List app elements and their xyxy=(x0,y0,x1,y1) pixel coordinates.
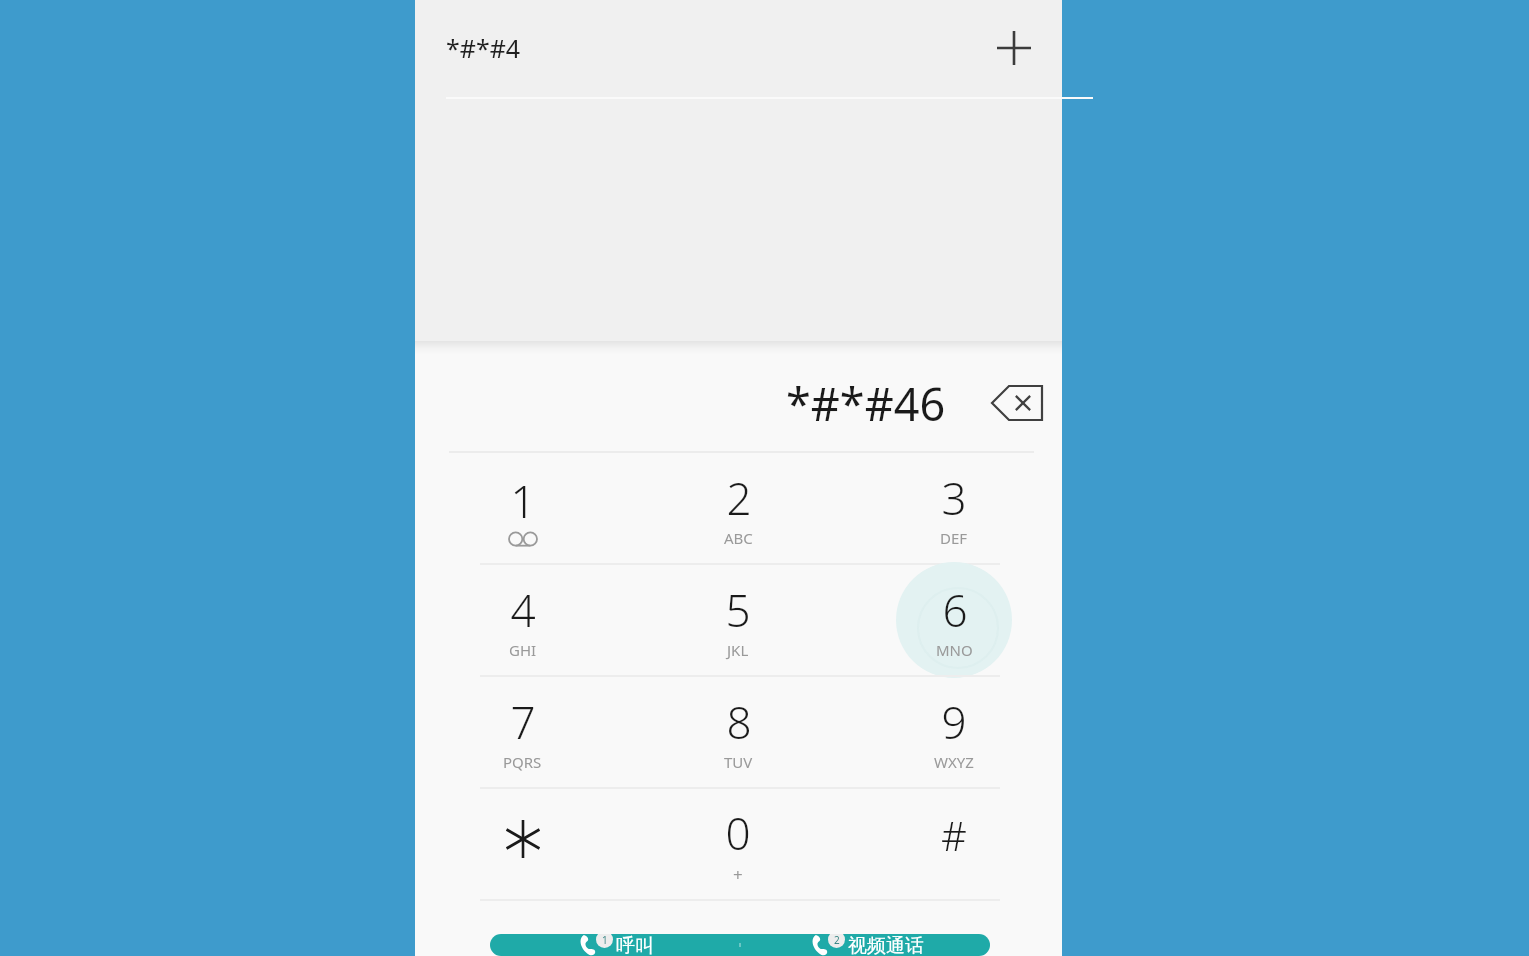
staticText: 呼叫 xyxy=(616,934,654,956)
staticText: 1 xyxy=(510,471,536,531)
button[interactable]: 1 xyxy=(490,934,739,956)
staticText: DEF xyxy=(940,528,968,548)
staticText: 6 xyxy=(942,580,968,640)
button[interactable]: 4 xyxy=(415,565,630,675)
staticText: WXYZ xyxy=(934,752,974,772)
staticText: 2 xyxy=(726,468,752,528)
staticText: + xyxy=(733,863,743,886)
staticText: 0 xyxy=(725,803,751,863)
staticText: 8 xyxy=(726,692,752,752)
staticText: TUV xyxy=(724,752,753,772)
button[interactable]: 9 xyxy=(846,677,1062,787)
button[interactable] xyxy=(415,789,630,899)
staticText: 5 xyxy=(725,580,751,640)
button[interactable]: 3 xyxy=(846,453,1062,563)
staticText: # xyxy=(941,808,967,862)
staticText: ABC xyxy=(724,528,753,548)
button[interactable]: 8 xyxy=(630,677,846,787)
staticText: 1 xyxy=(602,934,608,947)
staticText: *#*#46 xyxy=(786,373,946,434)
staticText: GHI xyxy=(509,640,537,660)
button[interactable]: 1 xyxy=(415,453,630,563)
staticText: 9 xyxy=(941,692,967,752)
staticText: 3 xyxy=(941,468,967,528)
button[interactable]: Backspace xyxy=(980,366,1054,440)
staticText: PQRS xyxy=(503,752,542,772)
button[interactable]: 6 xyxy=(846,565,1062,675)
staticText: 4 xyxy=(510,580,536,640)
button[interactable]: 2 xyxy=(630,453,846,563)
staticText: MNO xyxy=(936,640,973,660)
staticText: 视频通话 xyxy=(848,934,924,956)
button[interactable]: 0 xyxy=(630,789,846,899)
staticText: JKL xyxy=(727,640,749,660)
button[interactable]: 7 xyxy=(415,677,630,787)
button[interactable]: 5 xyxy=(630,565,846,675)
staticText: 7 xyxy=(510,692,536,752)
staticText: *#*#4 xyxy=(446,31,521,65)
staticText: 2 xyxy=(834,934,840,947)
button[interactable]: 2 xyxy=(741,934,990,956)
button[interactable]: Add contact xyxy=(978,12,1050,84)
button[interactable]: # xyxy=(846,789,1062,899)
